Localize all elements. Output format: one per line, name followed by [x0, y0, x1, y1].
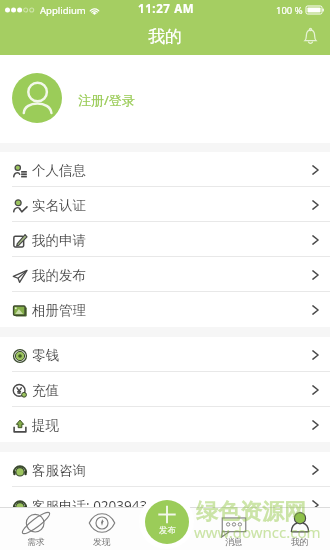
staticText: 我的	[291, 537, 309, 548]
button[interactable]: 实名认证	[0, 187, 330, 222]
staticText: 充值	[32, 382, 59, 399]
button[interactable]: 相册管理	[0, 292, 330, 327]
staticText: 发现	[93, 537, 111, 548]
staticText: 个人信息	[32, 162, 86, 179]
button[interactable]: 发现	[69, 507, 135, 550]
button[interactable]: 需求	[3, 507, 69, 550]
staticText: 发布	[159, 525, 176, 536]
button[interactable]: Notifications	[296, 22, 324, 50]
staticText: 我的	[148, 26, 182, 47]
button[interactable]: 我的申请	[0, 222, 330, 257]
staticText: 消息	[225, 537, 243, 548]
staticText: 我的申请	[32, 232, 86, 249]
staticText: 零钱	[32, 347, 59, 364]
button[interactable]: 提现	[0, 407, 330, 442]
staticText: 11:27 AM	[138, 1, 195, 17]
button[interactable]: 注册/登录	[0, 55, 330, 143]
button[interactable]: 消息	[201, 507, 267, 550]
button[interactable]: 客服咨询	[0, 452, 330, 487]
staticText: 提现	[32, 417, 59, 434]
staticText: 绿色资源网	[196, 498, 306, 526]
staticText: 注册/登录	[78, 91, 135, 109]
staticText: 我的发布	[32, 267, 86, 284]
staticText: 相册管理	[32, 302, 86, 319]
button[interactable]: 充值	[0, 372, 330, 407]
button[interactable]: 我的发布	[0, 257, 330, 292]
staticText: 客服电话: 0203943	[32, 497, 148, 515]
staticText: 实名认证	[32, 197, 86, 214]
button[interactable]: 零钱	[0, 337, 330, 372]
staticText: www.downcc.com	[194, 522, 321, 542]
button[interactable]: 发布	[145, 500, 189, 544]
staticText: 客服咨询	[32, 462, 86, 479]
button[interactable]: 个人信息	[0, 152, 330, 187]
staticText: Applidium	[40, 4, 86, 17]
button[interactable]: 我的	[267, 507, 330, 550]
staticText: 需求	[27, 537, 45, 548]
staticText: 100 %	[276, 4, 303, 17]
button[interactable]: 客服电话: 0203943	[0, 487, 330, 522]
